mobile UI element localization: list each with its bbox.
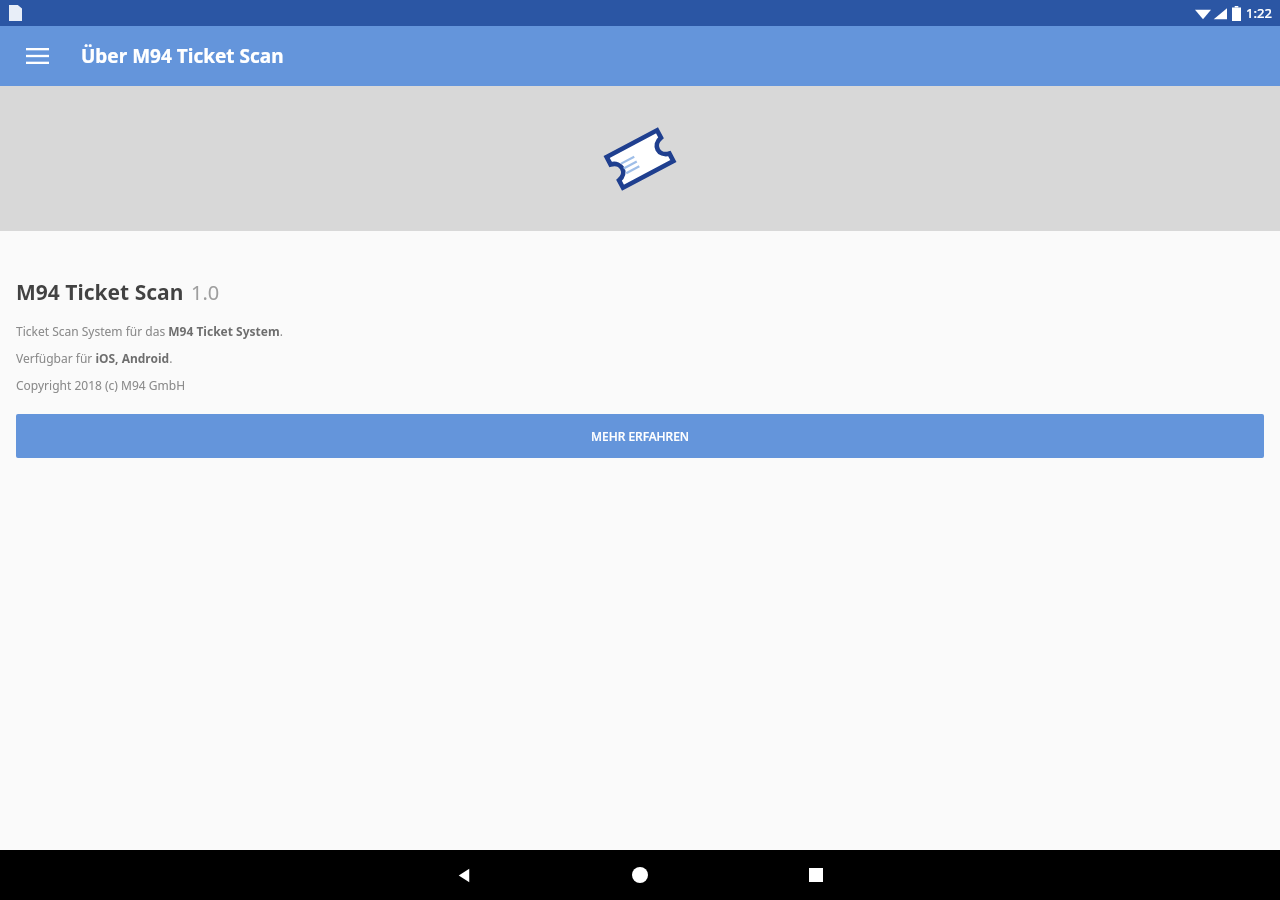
- button[interactable]: Menü öffnen: [14, 33, 60, 79]
- staticText: 1.0: [191, 279, 220, 306]
- button[interactable]: Startbildschirm: [616, 851, 664, 899]
- button[interactable]: Zurück: [440, 851, 488, 899]
- staticText: Copyright 2018 (c) M94 GmbH: [16, 377, 186, 393]
- staticText: Verfügbar für iOS, Android.: [16, 350, 173, 366]
- staticText: Über M94 Ticket Scan: [81, 43, 284, 69]
- button[interactable]: Übersicht: [792, 851, 840, 899]
- staticText: Ticket Scan System für das M94 Ticket Sy…: [16, 323, 283, 339]
- button[interactable]: MEHR ERFAHREN: [16, 414, 1264, 458]
- staticText: M94 Ticket Scan: [16, 278, 184, 307]
- staticText: MEHR ERFAHREN: [591, 428, 690, 444]
- staticText: 1:22: [1246, 4, 1272, 22]
